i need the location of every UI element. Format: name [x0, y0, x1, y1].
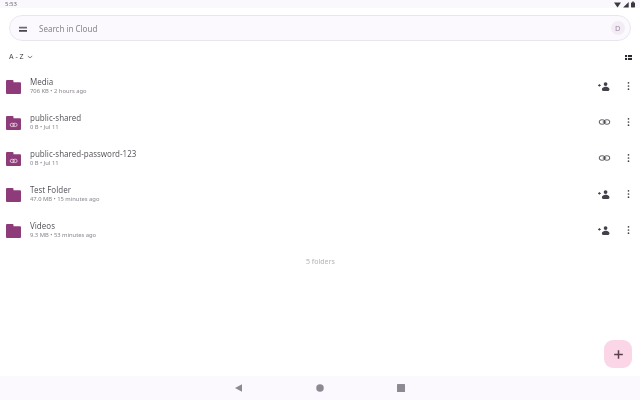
button[interactable]: Test Folder [0, 176, 640, 212]
button[interactable]: Copy link [594, 112, 614, 132]
staticText: 47.0 MB • 15 minutes ago [30, 195, 100, 203]
button[interactable]: Videos [0, 212, 640, 248]
button[interactable]: Share [594, 220, 614, 240]
button[interactable]: Back [198, 376, 278, 400]
staticText: 0 B • Jul 11 [30, 159, 59, 167]
staticText: public-shared [30, 112, 82, 123]
staticText: 5:53 [5, 0, 17, 8]
button[interactable]: More options [620, 78, 636, 94]
staticText: Test Folder [30, 184, 71, 195]
button[interactable]: More options [620, 186, 636, 202]
button[interactable]: Copy link [594, 148, 614, 168]
button[interactable]: More options [620, 222, 636, 238]
staticText: 5 folders [306, 257, 335, 267]
staticText: public-shared-password-123 [30, 148, 137, 159]
button[interactable]: Media [0, 68, 640, 104]
staticText: Search in Cloud [39, 23, 98, 34]
button[interactable]: public-shared [0, 104, 640, 140]
staticText: D [615, 23, 621, 33]
staticText: 706 KB • 2 hours ago [30, 87, 87, 95]
button[interactable]: A - Z [9, 52, 32, 62]
staticText: 0 B • Jul 11 [30, 123, 59, 131]
button[interactable]: More options [620, 150, 636, 166]
button[interactable]: Add [604, 340, 632, 368]
button[interactable]: Home [280, 376, 360, 400]
button[interactable]: Account [611, 21, 625, 35]
staticText: Videos [30, 220, 55, 231]
button[interactable]: Share [594, 76, 614, 96]
staticText: 9.3 MB • 53 minutes ago [30, 231, 97, 239]
button[interactable]: More options [620, 114, 636, 130]
staticText: A - Z [9, 52, 24, 62]
button[interactable]: public-shared-password-123 [0, 140, 640, 176]
button[interactable]: Recents [361, 376, 441, 400]
button[interactable]: Switch view [622, 51, 634, 63]
button[interactable]: Share [594, 184, 614, 204]
button[interactable]: Search in Cloud [9, 15, 631, 41]
staticText: Media [30, 76, 54, 87]
